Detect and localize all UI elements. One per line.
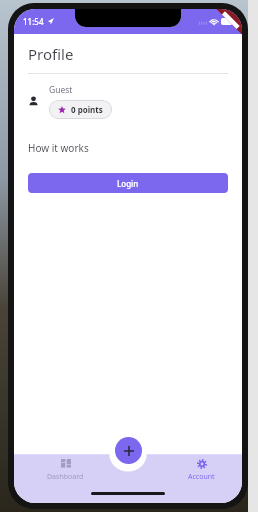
other: Debug banner [202,9,242,49]
button[interactable]: Login [28,173,228,193]
button[interactable]: Add [115,437,142,464]
staticText: Guest [49,84,73,96]
button[interactable]: How it works [28,141,89,155]
button[interactable]: 0 points [49,100,112,119]
button[interactable]: Account [183,457,220,484]
staticText: 11:54 [23,16,44,27]
staticText: Profile [28,44,74,64]
staticText: Dashboard [47,472,84,482]
staticText: Login [117,178,139,189]
button[interactable]: Dashboard [42,457,89,484]
staticText: Account [188,472,215,482]
staticText: 0 points [71,104,103,115]
